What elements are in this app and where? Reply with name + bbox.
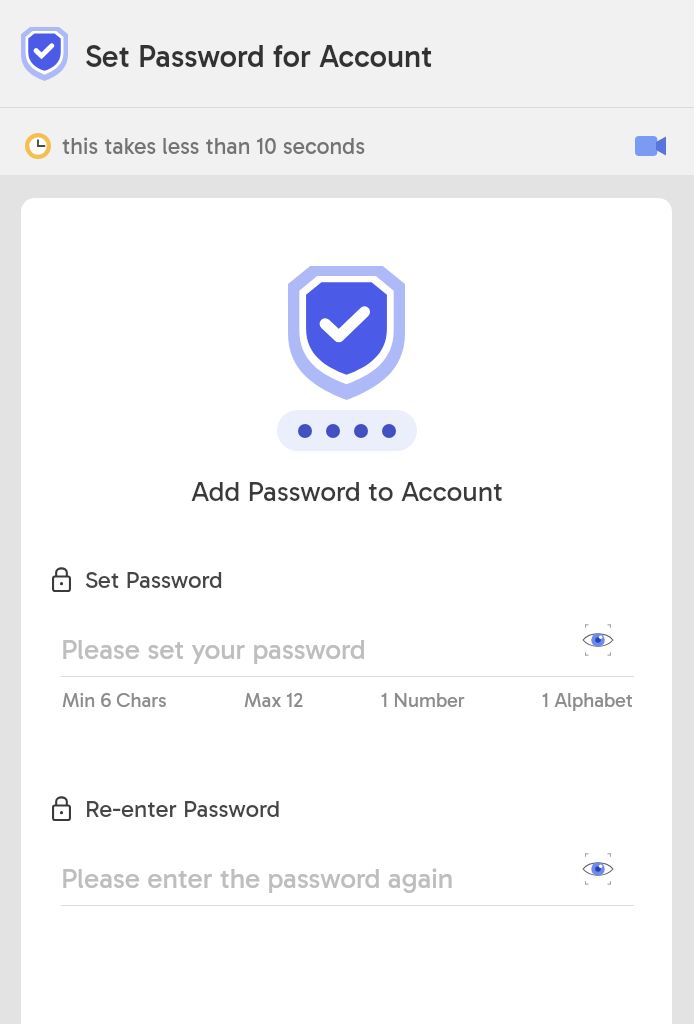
staticText: this takes less than 10 seconds xyxy=(62,132,366,160)
button[interactable]: Play help video xyxy=(627,128,673,164)
staticText: 1 Alphabet xyxy=(542,688,634,712)
staticText: Set Password xyxy=(85,565,223,594)
staticText: Min 6 Chars xyxy=(62,688,167,712)
staticText: Add Password to Account xyxy=(191,475,503,509)
staticText: Please enter the password again xyxy=(61,862,454,896)
staticText: Please set your password xyxy=(61,633,366,667)
button[interactable]: Set Password for Account xyxy=(21,0,678,107)
staticText: Set Password for Account xyxy=(85,38,433,75)
staticText: Re-enter Password xyxy=(85,794,281,823)
button[interactable]: Show password xyxy=(576,618,620,662)
button[interactable]: Show password xyxy=(576,847,620,891)
staticText: 1 Number xyxy=(381,688,465,712)
staticText: Max 12 xyxy=(244,688,304,712)
